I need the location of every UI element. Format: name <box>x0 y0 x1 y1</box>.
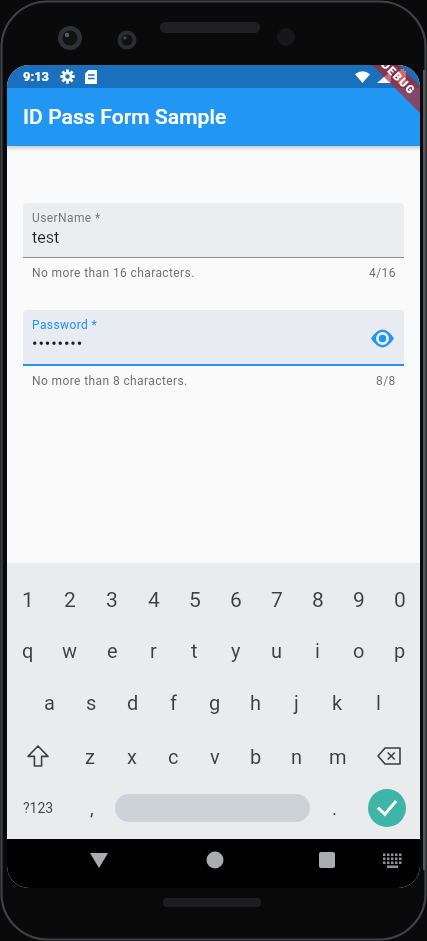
button[interactable]: l <box>358 683 399 721</box>
staticText: DEBUG <box>379 65 418 98</box>
button[interactable]: n <box>276 737 317 775</box>
staticText: , <box>90 797 94 819</box>
staticText: m <box>329 745 347 768</box>
staticText: j <box>294 691 299 714</box>
staticText: s <box>86 691 97 714</box>
button[interactable]: d <box>112 683 153 721</box>
button[interactable]: h <box>235 683 276 721</box>
staticText: test <box>32 228 60 247</box>
staticText: 4 <box>148 588 160 613</box>
staticText: h <box>250 691 262 714</box>
staticText: 4/16 <box>369 266 396 280</box>
button[interactable]: 6 <box>215 580 256 620</box>
button[interactable]: o <box>338 630 379 670</box>
button[interactable]: 3 <box>91 580 133 620</box>
button[interactable] <box>282 839 420 888</box>
button[interactable] <box>115 794 310 822</box>
staticText: q <box>22 639 34 662</box>
button[interactable] <box>7 737 69 775</box>
staticText: ID Pass Form Sample <box>23 105 227 130</box>
staticText: g <box>209 691 221 714</box>
button[interactable] <box>7 839 144 888</box>
staticText: 2 <box>64 588 76 613</box>
staticText: 6 <box>230 588 242 613</box>
staticText: d <box>127 691 139 714</box>
staticText: 9:13 <box>23 69 50 84</box>
button[interactable]: f <box>153 683 194 721</box>
button[interactable]: x <box>111 737 153 775</box>
button[interactable]: y <box>215 630 256 670</box>
staticText: 7 <box>271 588 283 613</box>
staticText: v <box>210 745 220 768</box>
staticText: o <box>353 639 365 662</box>
button[interactable]: v <box>194 737 235 775</box>
button[interactable]: 4 <box>133 580 174 620</box>
button[interactable] <box>144 839 282 888</box>
button[interactable]: i <box>297 630 338 670</box>
button[interactable]: q <box>7 630 49 670</box>
button[interactable] <box>368 789 406 827</box>
staticText: a <box>44 691 55 714</box>
button[interactable]: g <box>194 683 235 721</box>
staticText: w <box>62 639 78 662</box>
button[interactable]: u <box>256 630 297 670</box>
button[interactable]: m <box>317 737 358 775</box>
button[interactable]: 8 <box>297 580 338 620</box>
staticText: 8/8 <box>376 374 396 388</box>
button[interactable]: r <box>133 630 174 670</box>
button[interactable]: Password * <box>23 310 404 366</box>
button[interactable]: 7 <box>256 580 297 620</box>
button[interactable]: t <box>174 630 215 670</box>
staticText: c <box>168 745 179 768</box>
staticText: 8 <box>312 588 324 613</box>
button[interactable]: 2 <box>49 580 91 620</box>
staticText: . <box>332 797 338 819</box>
button[interactable]: 9 <box>338 580 379 620</box>
staticText: k <box>332 691 343 714</box>
button[interactable]: 5 <box>174 580 215 620</box>
staticText: 9 <box>353 588 365 613</box>
staticText: p <box>394 639 406 662</box>
button[interactable]: z <box>69 737 111 775</box>
staticText: 5 <box>189 588 201 613</box>
button[interactable]: p <box>379 630 420 670</box>
button[interactable]: s <box>70 683 112 721</box>
button[interactable]: k <box>317 683 358 721</box>
staticText: i <box>315 639 320 662</box>
button[interactable]: e <box>91 630 133 670</box>
staticText: e <box>107 639 118 662</box>
button[interactable]: b <box>235 737 276 775</box>
button[interactable]: j <box>276 683 317 721</box>
staticText: t <box>191 639 198 662</box>
staticText: ?123 <box>23 800 54 816</box>
staticText: UserName * <box>32 211 101 225</box>
button[interactable]: . <box>317 787 353 829</box>
staticText: y <box>231 639 241 662</box>
button[interactable]: , <box>72 787 112 829</box>
staticText: r <box>150 639 157 662</box>
staticText: b <box>250 745 262 768</box>
button[interactable]: 1 <box>7 580 49 620</box>
button[interactable]: a <box>28 683 70 721</box>
staticText: •••••••• <box>32 335 84 353</box>
button[interactable] <box>371 330 394 347</box>
staticText: z <box>85 745 95 768</box>
button[interactable]: UserName * <box>23 203 404 258</box>
button[interactable]: c <box>153 737 194 775</box>
staticText: x <box>127 745 137 768</box>
button[interactable]: w <box>49 630 91 670</box>
staticText: 3 <box>106 588 118 613</box>
staticText: No more than 8 characters. <box>32 374 188 388</box>
staticText: 1 <box>22 588 34 613</box>
staticText: u <box>271 639 283 662</box>
staticText: No more than 16 characters. <box>32 266 195 280</box>
staticText: f <box>170 691 177 714</box>
button[interactable]: ?123 <box>14 787 62 829</box>
staticText: Password * <box>32 318 98 332</box>
staticText: n <box>291 745 303 768</box>
staticText: l <box>376 691 381 714</box>
button[interactable] <box>358 737 420 775</box>
staticText: 0 <box>394 588 406 613</box>
button[interactable]: 0 <box>379 580 420 620</box>
